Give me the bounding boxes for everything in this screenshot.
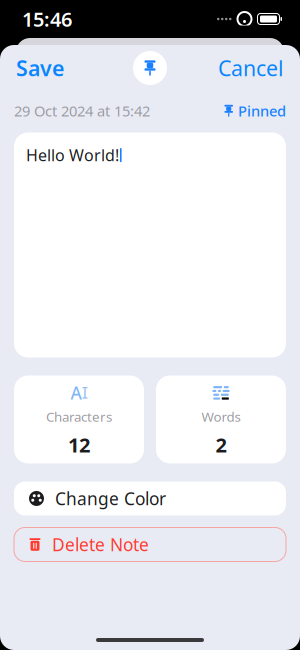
staticText: Change Color <box>55 487 166 510</box>
staticText: Characters <box>46 408 112 425</box>
staticText: 12 <box>68 432 90 458</box>
button[interactable]: Change Color <box>14 481 286 515</box>
button[interactable]: Save <box>2 44 78 92</box>
staticText: Delete Note <box>52 533 149 556</box>
button[interactable]: Toggle pin <box>133 51 167 85</box>
staticText: Words <box>201 408 240 425</box>
staticText: Cancel <box>218 54 284 82</box>
staticText: 15:46 <box>22 6 72 32</box>
staticText: Save <box>16 54 64 82</box>
staticText: A <box>70 381 81 404</box>
staticText: Pinned <box>238 101 286 120</box>
staticText: Hello World! <box>26 144 119 166</box>
button[interactable]: Cancel <box>204 44 298 92</box>
staticText: 29 Oct 2024 at 15:42 <box>14 101 150 120</box>
staticText: 2 <box>215 432 226 458</box>
button[interactable]: Delete Note <box>14 527 286 561</box>
